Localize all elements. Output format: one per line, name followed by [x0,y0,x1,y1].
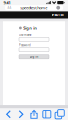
button[interactable]: Log in [19,55,49,59]
button[interactable]: Bookmarks [41,108,53,120]
staticText: AA [7,6,11,9]
staticText: Username [19,33,32,37]
staticText: Log in [29,55,38,58]
button[interactable]: Share [28,108,40,120]
staticText: SPEEDTEST [51,13,64,17]
staticText: speedtest.home [20,5,47,10]
staticText: Password [19,44,31,47]
button[interactable]: AA [5,5,63,10]
button[interactable]: Forward [15,108,27,120]
staticText: Sign in [23,25,37,31]
staticText: 9:41 [3,0,10,5]
button[interactable]: Back [2,108,14,120]
button[interactable]: Tabs [54,108,66,120]
